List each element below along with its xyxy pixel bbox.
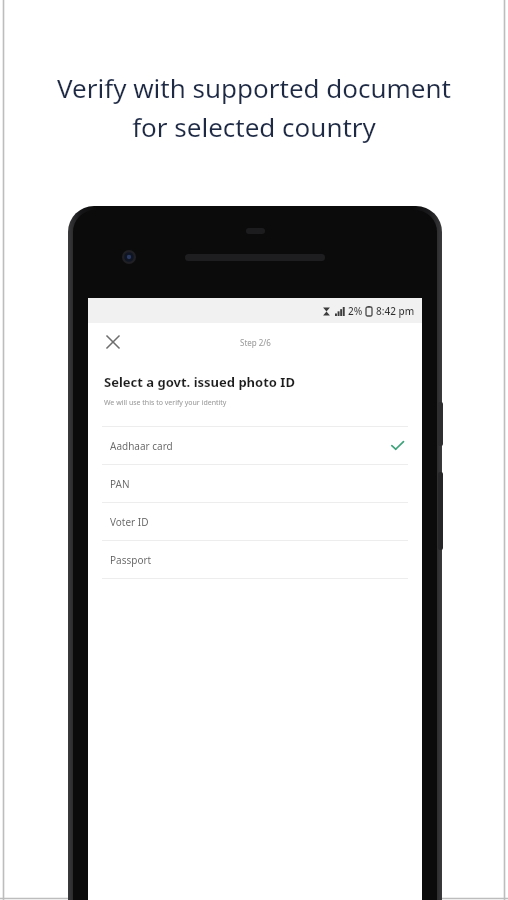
staticText: Aadhaar card (110, 439, 173, 453)
staticText: We will use this to verify your identity (104, 398, 227, 408)
staticText: 2% (348, 304, 363, 318)
staticText: Voter ID (110, 515, 149, 529)
button[interactable]: Voter ID (88, 503, 422, 540)
staticText: PAN (110, 477, 130, 491)
staticText: 8:42 pm (376, 304, 415, 318)
staticText: Step 2/6 (240, 337, 271, 348)
staticText: Passport (110, 553, 152, 567)
button[interactable]: Aadhaar card (88, 427, 422, 464)
button[interactable]: Passport (88, 541, 422, 578)
staticText: Select a govt. issued photo ID (104, 373, 295, 391)
button[interactable]: PAN (88, 465, 422, 502)
staticText: Verify with supported document (57, 70, 451, 105)
button[interactable]: Close (100, 329, 126, 355)
staticText: for selected country (132, 109, 376, 144)
